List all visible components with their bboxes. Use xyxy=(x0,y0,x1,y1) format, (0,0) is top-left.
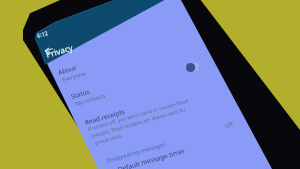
staticText: 6:12 xyxy=(36,29,48,39)
staticText: My contacts xyxy=(74,92,106,107)
staticText: group chats. xyxy=(94,132,125,147)
staticText: receipts. Read receipts are always sent … xyxy=(90,106,187,140)
staticText: About xyxy=(57,63,77,77)
staticText: Everyone xyxy=(61,69,86,83)
staticText: Privacy xyxy=(44,41,74,60)
button[interactable]: Back xyxy=(44,45,54,55)
staticText: Status xyxy=(70,87,91,101)
staticText: Read receipts xyxy=(84,107,127,127)
staticText: Off xyxy=(224,120,235,129)
staticText: If turned off, you won't send or receive… xyxy=(87,97,189,133)
button[interactable]: Read receipts toggle xyxy=(186,62,200,72)
staticText: Default message timer xyxy=(117,146,187,169)
staticText: Disappearing messages xyxy=(105,140,166,164)
